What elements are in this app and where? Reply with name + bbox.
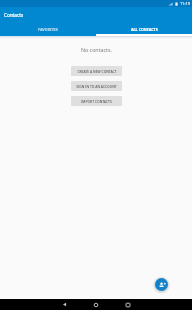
button[interactable]: Add contact <box>152 275 171 294</box>
button[interactable]: Recents <box>112 299 144 310</box>
staticText: IMPORT CONTACTS <box>81 99 112 104</box>
staticText: 11:19 <box>180 1 190 6</box>
button[interactable]: CREATE A NEW CONTACT <box>71 66 122 76</box>
button[interactable]: Back <box>48 299 80 310</box>
button[interactable]: IMPORT CONTACTS <box>71 96 122 106</box>
button[interactable]: Home <box>80 299 112 310</box>
button[interactable]: ALL CONTACTS <box>96 21 192 36</box>
staticText: ALL CONTACTS <box>131 27 158 32</box>
button[interactable]: FAVORITES <box>0 21 96 36</box>
staticText: No contacts. <box>81 46 112 53</box>
staticText: Contacts <box>4 12 24 18</box>
staticText: FAVORITES <box>38 27 58 32</box>
button[interactable]: SIGN IN TO AN ACCOUNT <box>71 81 122 91</box>
staticText: SIGN IN TO AN ACCOUNT <box>76 84 117 89</box>
staticText: CREATE A NEW CONTACT <box>77 69 117 74</box>
